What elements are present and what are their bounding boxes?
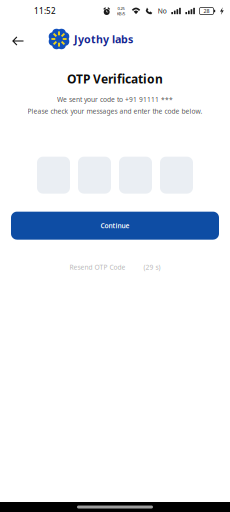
staticText: Resend OTP Code xyxy=(69,263,125,271)
staticText: Please check your messages and enter the… xyxy=(27,107,202,116)
staticText: 28 xyxy=(203,7,209,15)
staticText: (29 s) xyxy=(143,263,160,271)
staticText: OTP Verification xyxy=(67,71,163,87)
button[interactable]: Continue xyxy=(11,212,219,240)
staticText: No xyxy=(158,7,167,15)
staticText: Continue xyxy=(100,221,129,230)
button[interactable]: Back xyxy=(6,25,30,53)
button[interactable]: Resend OTP Code xyxy=(69,263,160,271)
staticText: KB/S xyxy=(117,11,125,16)
staticText: We sent your code to +91 91111 *** xyxy=(57,95,173,104)
staticText: 0.25 xyxy=(117,6,124,11)
staticText: Jyothy labs xyxy=(74,32,133,46)
staticText: 11:52 xyxy=(34,6,56,16)
